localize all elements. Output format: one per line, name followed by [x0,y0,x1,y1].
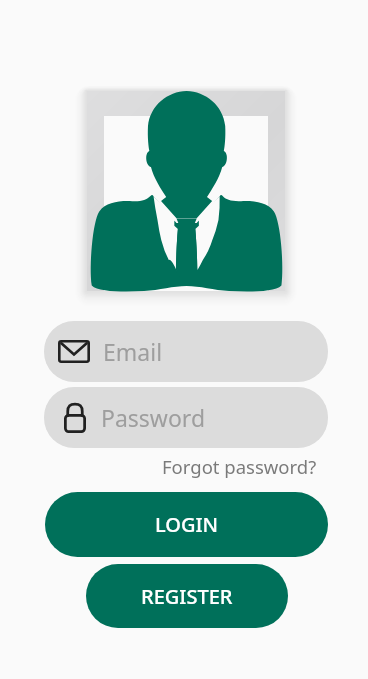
button[interactable]: Password [44,387,328,448]
button[interactable]: LOGIN [45,492,328,557]
other: Email [58,340,90,363]
other: Password [64,403,86,433]
staticText: Email [103,336,163,367]
staticText: Password [101,402,206,433]
staticText: LOGIN [155,511,219,538]
button[interactable]: REGISTER [86,564,288,628]
staticText: Forgot password? [162,454,317,479]
button[interactable]: Email [44,321,328,382]
button[interactable]: Forgot password? [162,453,317,479]
staticText: REGISTER [141,583,233,610]
